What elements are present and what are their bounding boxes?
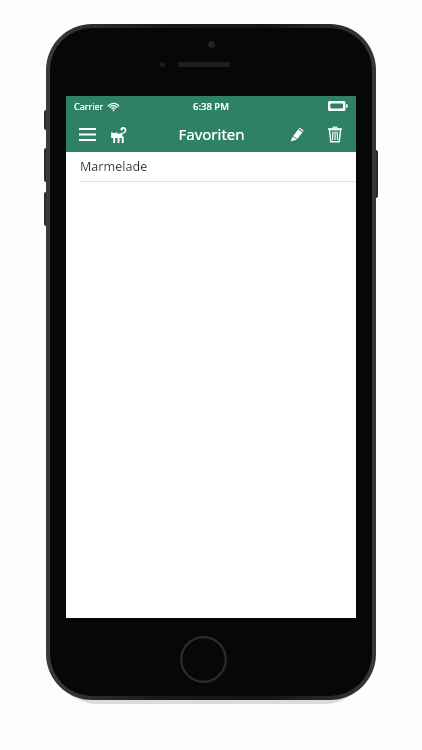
button[interactable]: Pets xyxy=(104,119,134,149)
staticText: Marmelade xyxy=(80,158,148,175)
button[interactable]: Delete xyxy=(319,118,351,150)
button[interactable]: Marmelade xyxy=(66,152,356,182)
other: Home xyxy=(180,636,227,683)
button[interactable]: Edit xyxy=(281,118,313,150)
button[interactable]: Menu xyxy=(72,119,102,149)
staticText: Favoriten xyxy=(178,124,245,144)
staticText: 6:38 PM xyxy=(193,100,229,113)
staticText: Carrier xyxy=(74,100,104,112)
